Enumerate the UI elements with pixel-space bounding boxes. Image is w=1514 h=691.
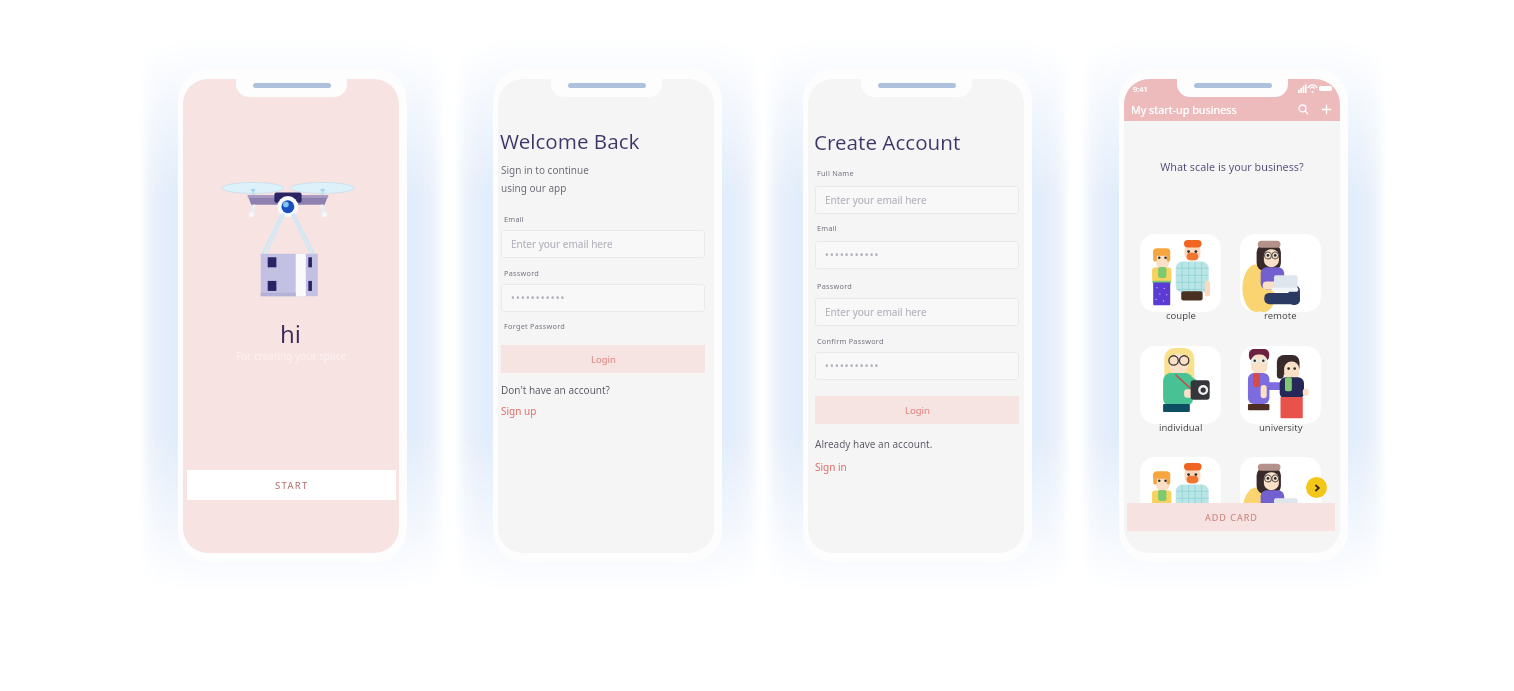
button[interactable]: ADD CARD xyxy=(1127,503,1335,531)
button[interactable]: Sign up xyxy=(501,404,537,418)
staticText: remote xyxy=(1264,309,1297,322)
button[interactable]: Enter your email here xyxy=(815,186,1019,214)
staticText: ••••••••••• xyxy=(825,248,880,262)
button[interactable]: ••••••••••• xyxy=(501,284,705,312)
staticText: hi xyxy=(280,317,302,350)
button[interactable]: ••••••••••• xyxy=(815,352,1019,380)
button[interactable]: START xyxy=(187,470,396,500)
staticText: Login xyxy=(905,404,930,417)
staticText: Forget Password xyxy=(504,321,566,331)
button[interactable]: Sign in xyxy=(815,460,847,474)
staticText: Enter your email here xyxy=(825,193,927,207)
staticText: Enter your email here xyxy=(511,237,613,251)
staticText: 9:41 xyxy=(1133,84,1148,94)
button[interactable]: Add xyxy=(1320,103,1333,116)
button[interactable]: Enter your email here xyxy=(815,298,1019,326)
button[interactable] xyxy=(1240,457,1321,504)
button[interactable] xyxy=(1140,234,1221,312)
staticText: ADD CARD xyxy=(1205,511,1258,523)
staticText: Full Name xyxy=(817,168,854,178)
button[interactable]: Login xyxy=(815,396,1019,424)
staticText: Already have an account. xyxy=(815,437,933,451)
staticText: Email xyxy=(504,214,524,224)
staticText: Welcome Back xyxy=(500,127,640,155)
button[interactable]: ••••••••••• xyxy=(815,241,1019,269)
staticText: university xyxy=(1259,421,1303,434)
staticText: couple xyxy=(1166,309,1196,322)
staticText: using our app xyxy=(501,181,567,195)
staticText: ••••••••••• xyxy=(825,359,880,373)
staticText: Sign in to continue xyxy=(501,163,589,177)
staticText: Sign in xyxy=(815,460,847,474)
staticText: Create Account xyxy=(814,128,961,156)
staticText: START xyxy=(275,479,309,492)
button[interactable]: Next xyxy=(1306,477,1327,498)
staticText: Enter your email here xyxy=(825,305,927,319)
staticText: Password xyxy=(504,268,540,278)
staticText: Password xyxy=(817,281,853,291)
staticText: My start-up business xyxy=(1131,102,1237,117)
staticText: Don't have an account? xyxy=(501,383,610,397)
button[interactable] xyxy=(1240,346,1321,424)
staticText: What scale is your business? xyxy=(1124,159,1340,174)
staticText: Email xyxy=(817,223,837,233)
staticText: Sign up xyxy=(501,404,537,418)
staticText: ••••••••••• xyxy=(511,291,566,305)
button[interactable]: Search xyxy=(1297,103,1310,116)
staticText: individual xyxy=(1159,421,1203,434)
button[interactable]: Enter your email here xyxy=(501,230,705,258)
staticText: Login xyxy=(591,353,616,366)
button[interactable] xyxy=(1140,346,1221,424)
button[interactable] xyxy=(1240,234,1321,312)
staticText: Confirm Password xyxy=(817,336,884,346)
staticText: For creating your space xyxy=(236,349,347,363)
button[interactable]: Login xyxy=(501,345,705,373)
button[interactable] xyxy=(1140,457,1221,504)
